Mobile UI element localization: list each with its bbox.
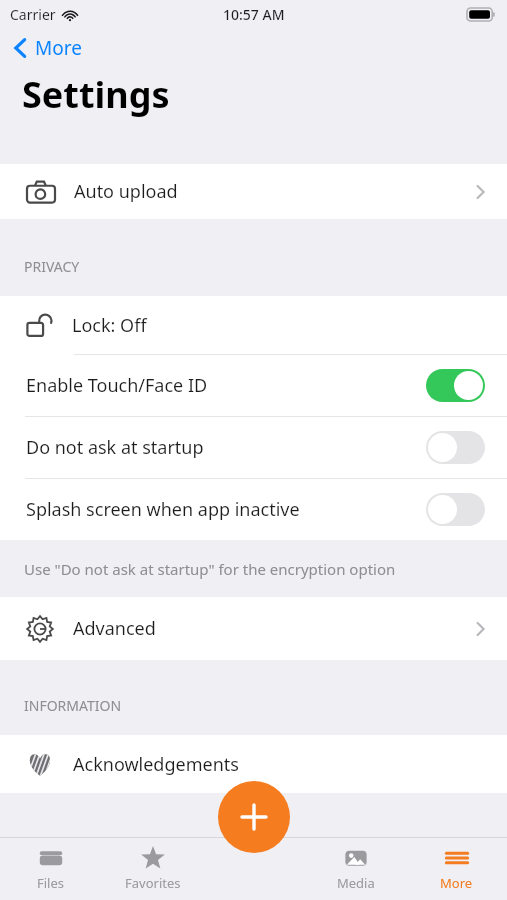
button[interactable]: Enable Touch/Face ID: [0, 355, 507, 416]
staticText: Media: [337, 874, 375, 892]
button[interactable]: Acknowledgements: [0, 735, 507, 793]
staticText: Enable Touch/Face ID: [26, 373, 208, 398]
staticText: Splash screen when app inactive: [26, 497, 300, 522]
staticText: Files: [37, 874, 65, 892]
button[interactable]: Advanced: [0, 597, 507, 660]
staticText: Settings: [22, 70, 170, 119]
button[interactable]: Splash screen when app inactive: [0, 479, 507, 540]
staticText: Favorites: [125, 874, 181, 892]
staticText: Carrier: [10, 5, 56, 24]
button[interactable]: Favorites: [102, 838, 204, 900]
staticText: Auto upload: [74, 179, 178, 204]
staticText: 10:57 AM: [223, 5, 285, 24]
staticText: More: [35, 35, 82, 61]
button[interactable]: More: [0, 28, 507, 68]
staticText: Do not ask at startup: [26, 435, 204, 460]
staticText: PRIVACY: [24, 257, 80, 276]
button[interactable]: Auto upload: [0, 164, 507, 219]
button[interactable]: Files: [0, 838, 102, 900]
staticText: More: [440, 874, 473, 892]
button[interactable]: Do not ask at startup: [0, 417, 507, 478]
button[interactable]: Lock: Off: [0, 296, 507, 354]
staticText: Acknowledgements: [73, 752, 239, 777]
button[interactable]: More: [406, 838, 507, 900]
button[interactable]: Media: [305, 838, 406, 900]
staticText: Lock: Off: [72, 313, 147, 338]
staticText: INFORMATION: [24, 696, 122, 715]
staticText: Advanced: [73, 616, 156, 641]
staticText: Use "Do not ask at startup" for the encr…: [24, 559, 396, 579]
button[interactable]: Add: [218, 781, 290, 853]
